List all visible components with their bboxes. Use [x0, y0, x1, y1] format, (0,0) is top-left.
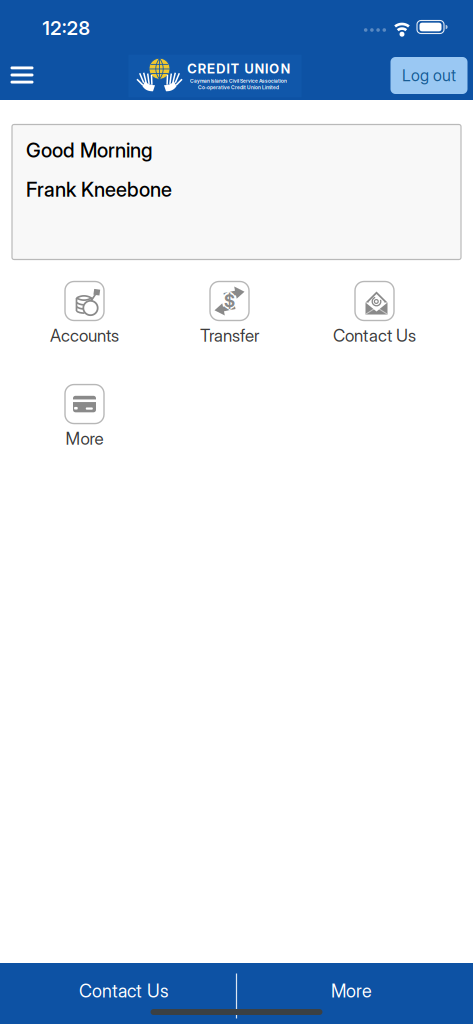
staticText: More — [331, 980, 372, 1002]
button[interactable]: $ — [157, 281, 302, 346]
staticText: Accounts — [50, 325, 119, 346]
staticText: Transfer — [200, 325, 259, 346]
staticText: Contact Us — [333, 325, 416, 346]
staticText: Log out — [402, 66, 456, 85]
staticText: CREDIT UNION — [187, 61, 290, 76]
button[interactable]: Menu — [0, 53, 44, 97]
staticText: Frank Kneebone — [26, 178, 172, 201]
staticText: More — [65, 429, 103, 449]
staticText: $ — [223, 292, 235, 313]
staticText: $ — [224, 291, 235, 311]
staticText: 12:28 — [42, 17, 90, 39]
staticText: Contact Us — [79, 980, 169, 1002]
button[interactable]: More — [233, 963, 469, 1019]
staticText: Cayman Islands Civil Service Association — [190, 78, 287, 84]
staticText: Co-operative Credit Union Limited — [198, 84, 279, 90]
staticText: $ — [225, 291, 237, 312]
button[interactable]: More — [12, 385, 157, 449]
button[interactable]: Contact Us — [6, 963, 242, 1019]
staticText: $ — [222, 290, 234, 311]
staticText: Good Morning — [26, 138, 153, 162]
staticText: $ — [223, 289, 235, 310]
button[interactable]: Accounts — [12, 281, 157, 346]
button[interactable]: Log out — [390, 57, 467, 94]
button[interactable]: Contact Us — [302, 281, 447, 346]
